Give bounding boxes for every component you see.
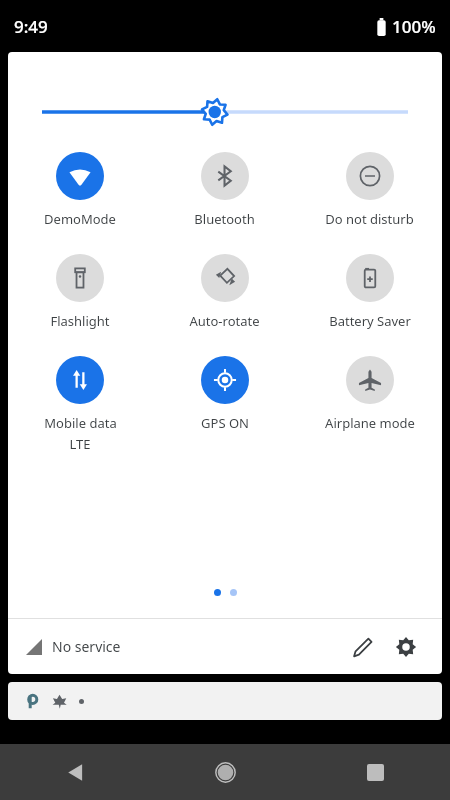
staticText: Mobile data (44, 414, 117, 432)
button[interactable]: Flashlight (8, 252, 152, 332)
button[interactable]: DemoMode (8, 150, 152, 230)
staticText: Flashlight (50, 312, 110, 330)
button[interactable]: Airplane mode (297, 354, 442, 434)
staticText: Bluetooth (194, 210, 255, 228)
staticText: LTE (69, 435, 91, 453)
button[interactable] (8, 682, 442, 720)
staticText: Airplane mode (325, 414, 415, 432)
button[interactable]: Do not disturb (297, 150, 442, 230)
button[interactable]: Edit tiles (342, 627, 382, 667)
staticText: 100% (392, 15, 436, 38)
button[interactable]: Home (150, 744, 300, 800)
button[interactable]: Bluetooth (152, 150, 297, 230)
staticText: Auto-rotate (189, 312, 260, 330)
button[interactable]: Back (0, 744, 150, 800)
button[interactable]: Battery Saver (297, 252, 442, 332)
button[interactable]: GPS ON (152, 354, 297, 434)
staticText: No service (52, 637, 121, 656)
staticText: DemoMode (44, 210, 116, 228)
button[interactable]: Settings (386, 627, 426, 667)
button[interactable]: Mobile data (8, 354, 152, 455)
staticText: GPS ON (201, 414, 249, 432)
staticText: Battery Saver (329, 312, 411, 330)
staticText: Do not disturb (325, 210, 414, 228)
button[interactable]: Recents (300, 744, 450, 800)
button[interactable] (8, 94, 442, 130)
button[interactable]: No service (26, 637, 121, 656)
button[interactable]: Auto-rotate (152, 252, 297, 332)
staticText: 9:49 (14, 15, 48, 38)
